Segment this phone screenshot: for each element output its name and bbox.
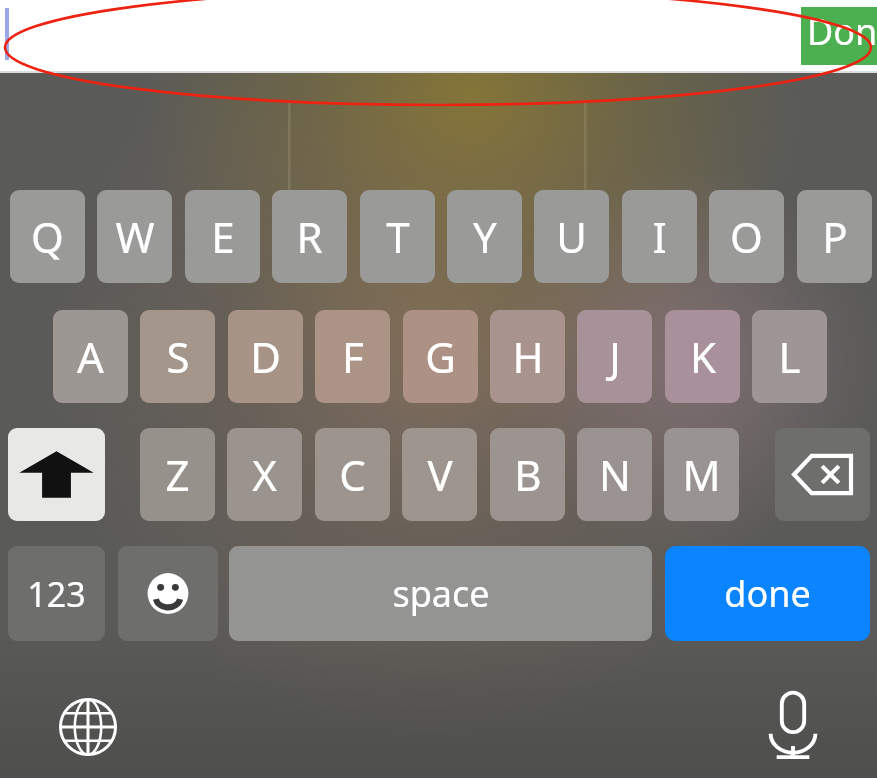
button[interactable]: 123 <box>8 546 105 641</box>
button[interactable]: C <box>315 428 390 521</box>
button[interactable]: Backspace <box>775 428 870 521</box>
staticText: Q <box>31 208 64 265</box>
button[interactable]: Shift <box>8 428 105 521</box>
button[interactable]: done <box>665 546 870 641</box>
staticText: P <box>822 208 848 265</box>
button[interactable]: Done <box>801 7 877 65</box>
staticText: Z <box>165 446 190 503</box>
staticText: Y <box>473 208 497 265</box>
button[interactable]: W <box>97 190 172 283</box>
button[interactable]: T <box>360 190 435 283</box>
staticText: L <box>778 328 801 385</box>
button[interactable]: Emoji <box>118 546 218 641</box>
button[interactable]: X <box>227 428 302 521</box>
button[interactable]: Y <box>447 190 522 283</box>
button[interactable]: Change keyboard <box>45 684 131 770</box>
staticText: space <box>392 569 490 618</box>
button[interactable]: A <box>53 310 128 403</box>
button[interactable]: E <box>185 190 260 283</box>
staticText: W <box>115 208 155 265</box>
button[interactable]: V <box>402 428 477 521</box>
staticText: J <box>609 328 621 385</box>
button[interactable]: P <box>797 190 872 283</box>
button[interactable]: M <box>664 428 739 521</box>
staticText: M <box>682 446 721 503</box>
button[interactable]: H <box>490 310 565 403</box>
button[interactable]: O <box>709 190 784 283</box>
staticText: K <box>690 328 716 385</box>
staticText: X <box>252 446 277 503</box>
staticText: 123 <box>27 571 86 617</box>
button[interactable]: Dictate <box>750 684 836 770</box>
staticText: U <box>556 208 587 265</box>
button[interactable]: Q <box>10 190 85 283</box>
button[interactable]: R <box>272 190 347 283</box>
staticText: I <box>652 208 667 265</box>
staticText: R <box>296 208 323 265</box>
button[interactable]: D <box>228 310 303 403</box>
button[interactable]: J <box>577 310 652 403</box>
staticText: G <box>425 328 456 385</box>
staticText: F <box>342 328 364 385</box>
staticText: D <box>250 328 281 385</box>
staticText: V <box>427 446 453 503</box>
button[interactable]: N <box>577 428 652 521</box>
staticText: T <box>386 208 410 265</box>
staticText: A <box>77 328 104 385</box>
staticText: O <box>730 208 763 265</box>
button[interactable]: K <box>665 310 740 403</box>
button[interactable]: Z <box>140 428 215 521</box>
button[interactable]: F <box>315 310 390 403</box>
staticText: C <box>339 446 366 503</box>
button[interactable]: S <box>140 310 215 403</box>
button[interactable]: space <box>229 546 652 641</box>
button[interactable]: L <box>752 310 827 403</box>
button[interactable]: I <box>622 190 697 283</box>
button[interactable]: B <box>490 428 565 521</box>
staticText: B <box>514 446 542 503</box>
staticText: Done <box>807 7 877 65</box>
staticText: N <box>599 446 631 503</box>
staticText: H <box>512 328 544 385</box>
staticText: done <box>724 569 811 618</box>
staticText: E <box>211 208 235 265</box>
button[interactable]: U <box>534 190 609 283</box>
button[interactable]: G <box>403 310 478 403</box>
staticText: S <box>166 328 190 385</box>
